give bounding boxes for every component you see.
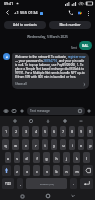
- button[interactable]: Stickers: [27, 117, 34, 124]
- button[interactable]: More: [77, 117, 84, 124]
- button[interactable]: o: [78, 139, 84, 150]
- button[interactable]: Back: [3, 8, 12, 17]
- staticText: b: [55, 169, 58, 173]
- button[interactable]: Home: [44, 192, 52, 200]
- button[interactable]: 9: [78, 126, 84, 137]
- button[interactable]: q: [2, 139, 9, 150]
- button[interactable]: l: [83, 152, 90, 163]
- button[interactable]: ?123: [2, 178, 14, 189]
- staticText: 09:41: [4, 1, 14, 6]
- button[interactable]: g: [43, 152, 50, 163]
- button[interactable]: y: [51, 139, 57, 150]
- button[interactable]: Block number: [49, 21, 91, 29]
- button[interactable]: s: [14, 152, 20, 163]
- staticText: x: [26, 169, 28, 173]
- staticText: v: [46, 169, 48, 173]
- staticText: 4: [35, 130, 37, 134]
- staticText: g: [45, 156, 48, 160]
- button[interactable]: w: [12, 139, 19, 150]
- staticText: l: [86, 156, 87, 160]
- button[interactable]: v: [43, 165, 50, 176]
- button[interactable]: m: [73, 165, 80, 176]
- button[interactable]: Take photo: [2, 107, 10, 115]
- staticText: Add to contacts: [13, 23, 37, 27]
- button[interactable]: p: [87, 139, 93, 150]
- button[interactable]: BAL: [79, 41, 92, 50]
- button[interactable]: a: [5, 152, 11, 163]
- button[interactable]: Shift: [2, 165, 11, 176]
- staticText: j: [66, 156, 67, 160]
- button[interactable]: r: [32, 139, 39, 150]
- staticText: z: [16, 169, 18, 173]
- staticText: Wednesday, 5 March 2025: [0, 34, 95, 38]
- button[interactable]: f: [33, 152, 40, 163]
- button[interactable]: d: [23, 152, 30, 163]
- staticText: Show all: [15, 82, 27, 86]
- button[interactable]: Add: [18, 107, 26, 115]
- button[interactable]: +1 555 0134: [13, 9, 44, 17]
- button[interactable]: e: [22, 139, 29, 150]
- staticText: 5: [44, 130, 46, 134]
- button[interactable]: .: [70, 178, 77, 189]
- button[interactable]: Enter: [80, 178, 93, 189]
- button[interactable]: Settings: [11, 117, 18, 124]
- staticText: 0: [89, 130, 91, 134]
- staticText: Sent: [71, 46, 77, 50]
- button[interactable]: t: [42, 139, 48, 150]
- button[interactable]: English (US): [26, 178, 67, 189]
- button[interactable]: j: [63, 152, 70, 163]
- button[interactable]: Welcome to the network! To activate, reg…: [12, 53, 89, 89]
- button[interactable]: c: [33, 165, 40, 176]
- button[interactable]: 2: [12, 126, 19, 137]
- staticText: o: [80, 143, 82, 147]
- button[interactable]: u: [60, 139, 66, 150]
- button[interactable]: 6: [51, 126, 57, 137]
- button[interactable]: k: [73, 152, 80, 163]
- staticText: 8: [71, 130, 73, 134]
- staticText: r: [35, 143, 37, 147]
- staticText: 6: [53, 130, 55, 134]
- button[interactable]: Add to contacts: [4, 21, 46, 29]
- staticText: English (US): [40, 182, 54, 185]
- staticText: Welcome to the network! To activate, reg…: [15, 55, 86, 79]
- button[interactable]: 0: [87, 126, 93, 137]
- button[interactable]: n: [63, 165, 70, 176]
- button[interactable]: Text message: [27, 107, 85, 115]
- button[interactable]: Attach image: [10, 107, 18, 115]
- staticText: Block number: [59, 23, 81, 27]
- staticText: .: [73, 182, 74, 186]
- staticText: s: [16, 156, 18, 160]
- button[interactable]: 8: [69, 126, 75, 137]
- button[interactable]: i: [69, 139, 75, 150]
- button[interactable]: Hide keyboard: [69, 192, 77, 200]
- staticText: h: [55, 156, 58, 160]
- button[interactable]: Voice input: [44, 117, 51, 124]
- button[interactable]: 1: [2, 126, 9, 137]
- button[interactable]: 3: [22, 126, 29, 137]
- staticText: p: [89, 143, 92, 147]
- button[interactable]: More options: [84, 9, 92, 17]
- button[interactable]: x: [23, 165, 30, 176]
- button[interactable]: 4: [32, 126, 39, 137]
- button[interactable]: 7: [60, 126, 66, 137]
- staticText: d: [25, 156, 28, 160]
- button[interactable]: Recents: [18, 192, 26, 200]
- staticText: 7: [62, 130, 64, 134]
- staticText: 9: [80, 130, 82, 134]
- staticText: y: [53, 143, 55, 147]
- staticText: +1 555 0134: [14, 10, 38, 16]
- button[interactable]: ,: [17, 178, 23, 189]
- button[interactable]: 5: [42, 126, 48, 137]
- button[interactable]: h: [53, 152, 60, 163]
- button[interactable]: Show all: [15, 81, 86, 87]
- button[interactable]: Keyboard settings: [61, 117, 68, 124]
- button[interactable]: Call: [66, 8, 75, 17]
- button[interactable]: b: [53, 165, 60, 176]
- staticText: m: [75, 169, 79, 173]
- button[interactable]: Video call: [75, 8, 84, 17]
- button[interactable]: Send: [85, 107, 93, 115]
- button[interactable]: z: [14, 165, 20, 176]
- button[interactable]: Backspace: [83, 165, 93, 176]
- staticText: c: [36, 169, 38, 173]
- staticText: q: [4, 143, 7, 147]
